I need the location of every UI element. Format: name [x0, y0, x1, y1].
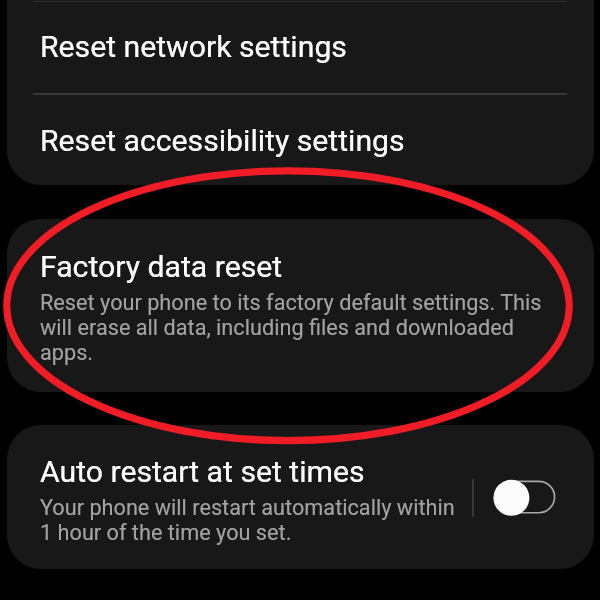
- button[interactable]: Factory data reset: [7, 219, 594, 392]
- button[interactable]: Auto restart at set times: [7, 425, 594, 569]
- staticText: Factory data reset: [40, 249, 283, 284]
- staticText: Reset network settings: [40, 29, 347, 64]
- staticText: Your phone will restart automatically wi…: [40, 495, 455, 545]
- button[interactable]: Reset accessibility settings: [7, 93, 594, 185]
- button[interactable]: Auto restart toggle: [490, 476, 560, 522]
- button[interactable]: [7, 0, 594, 2]
- button[interactable]: Reset network settings: [7, 2, 594, 93]
- staticText: Reset your phone to its factory default …: [40, 290, 555, 365]
- staticText: Reset accessibility settings: [40, 123, 405, 158]
- staticText: Auto restart at set times: [40, 454, 365, 489]
